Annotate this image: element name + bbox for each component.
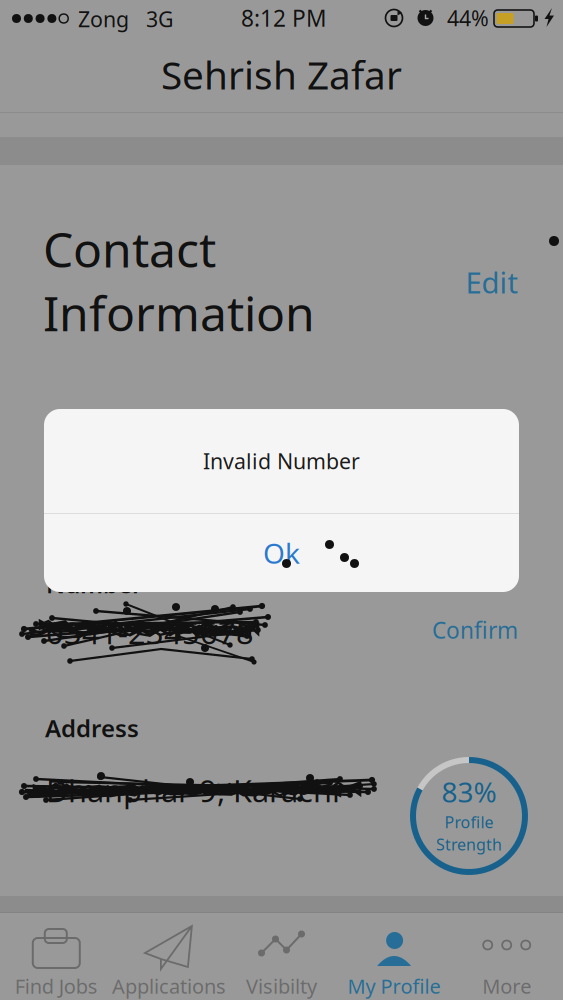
button[interactable]: Applications	[113, 913, 225, 1000]
staticText: Ok	[263, 534, 300, 572]
staticText: Visibilty	[246, 973, 317, 999]
staticText: 83%	[441, 773, 496, 810]
staticText: Contact Information	[43, 217, 315, 344]
staticText: 3G	[146, 5, 174, 33]
staticText: Confirm	[432, 615, 518, 645]
staticText: Number	[46, 568, 142, 600]
button[interactable]: Ok	[44, 514, 519, 592]
staticText: Find Jobs	[15, 973, 98, 999]
staticText: Zong	[78, 5, 129, 33]
staticText: My Profile	[348, 973, 441, 999]
staticText: Applications	[112, 973, 226, 999]
button[interactable]: Visibilty	[225, 913, 338, 1000]
staticText: Sehrish Zafar	[161, 49, 402, 100]
staticText: Strength	[436, 834, 502, 855]
staticText: Invalid Number	[203, 447, 360, 475]
button[interactable]: Edit	[0, 0, 563, 1000]
staticText: Dhanphar 9, Karachi	[46, 770, 340, 811]
staticText: 0341-2345678	[46, 612, 254, 653]
staticText: Profile	[444, 811, 493, 832]
staticText: 8:12 PM	[241, 3, 327, 33]
staticText: Edit	[465, 262, 518, 301]
staticText: More	[482, 973, 531, 999]
button[interactable]: Confirm	[0, 0, 563, 1000]
button[interactable]: More	[450, 913, 563, 1000]
button[interactable]: Find Jobs	[0, 913, 113, 1000]
button[interactable]: My Profile	[338, 913, 450, 1000]
staticText: 44%	[447, 4, 489, 32]
staticText: Address	[45, 712, 139, 744]
